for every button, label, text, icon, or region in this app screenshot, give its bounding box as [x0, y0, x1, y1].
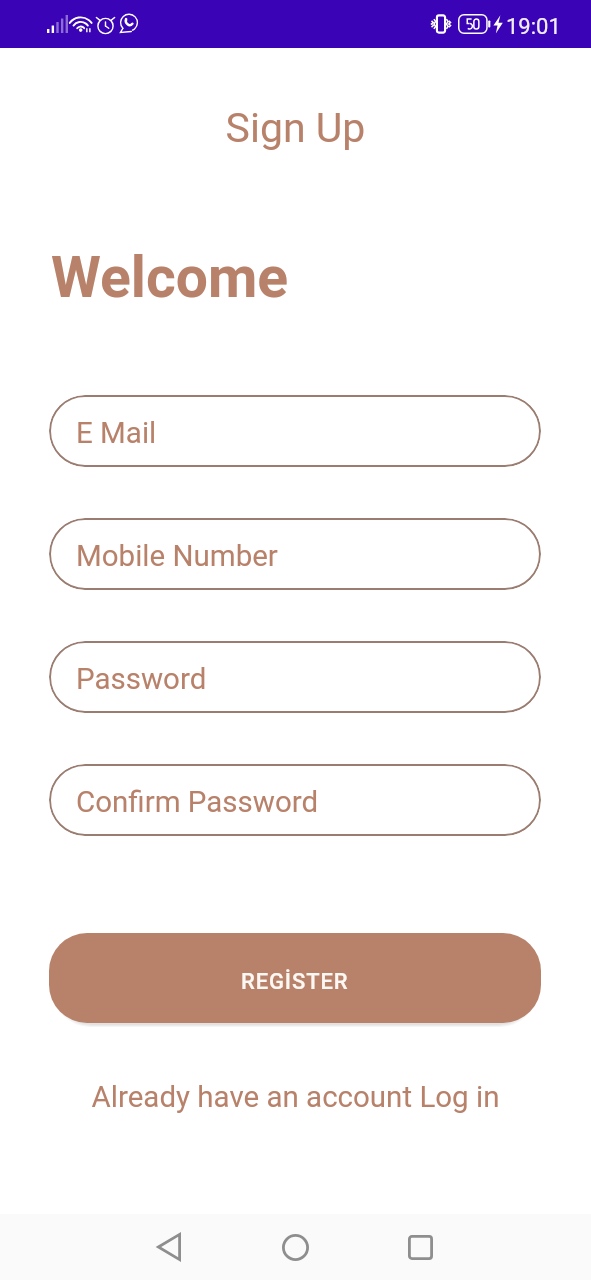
staticText: E Mail — [76, 416, 157, 451]
staticText: Already have an account Log in — [0, 1080, 591, 1115]
button[interactable]: Already have an account Log in — [0, 1080, 591, 1120]
button[interactable]: E Mail — [49, 395, 541, 467]
staticText: 19:01 — [506, 14, 561, 40]
button[interactable]: Confirm Password — [49, 764, 541, 836]
button[interactable]: REGİSTER — [49, 933, 541, 1023]
button[interactable]: Home — [263, 1214, 328, 1280]
staticText: Confirm Password — [76, 785, 319, 820]
button[interactable]: Password — [49, 641, 541, 713]
staticText: REGİSTER — [241, 969, 349, 995]
button[interactable]: Recents — [388, 1214, 453, 1280]
staticText: Password — [76, 662, 207, 697]
staticText: Sign Up — [0, 104, 591, 152]
staticText: Mobile Number — [76, 539, 278, 574]
button[interactable]: Back — [136, 1214, 201, 1280]
staticText: Welcome — [51, 244, 289, 311]
button[interactable]: Mobile Number — [49, 518, 541, 590]
